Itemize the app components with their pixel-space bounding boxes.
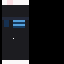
button[interactable] bbox=[13, 20, 25, 28]
